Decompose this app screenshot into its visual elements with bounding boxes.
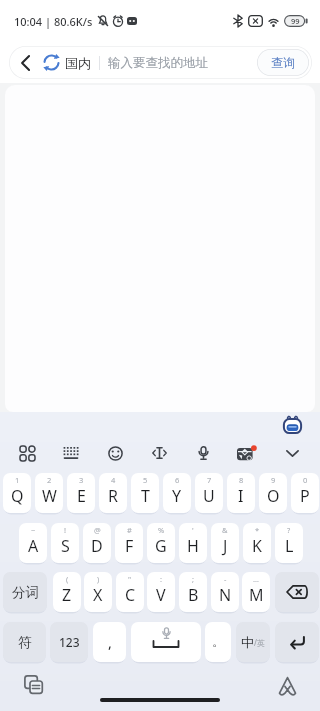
staticText: 查询: [271, 55, 295, 70]
button[interactable]: [278, 439, 306, 467]
staticText: 123: [59, 634, 80, 650]
staticText: !: [64, 525, 67, 535]
button[interactable]: 8: [227, 473, 255, 513]
button[interactable]: !: [51, 523, 79, 563]
staticText: /英: [254, 637, 265, 648]
button[interactable]: ": [116, 572, 144, 612]
staticText: 5: [143, 475, 148, 485]
button[interactable]: 0: [291, 473, 319, 513]
button[interactable]: ,: [93, 622, 126, 662]
button[interactable]: [21, 672, 47, 698]
button[interactable]: -: [211, 572, 239, 612]
staticText: U: [203, 485, 215, 507]
button[interactable]: 123: [50, 622, 88, 662]
button[interactable]: [9, 46, 43, 79]
button[interactable]: 。: [205, 622, 231, 662]
button[interactable]: %: [147, 523, 175, 563]
button[interactable]: *: [243, 523, 271, 563]
staticText: I: [238, 485, 244, 507]
staticText: B: [188, 584, 199, 606]
staticText: ;: [192, 574, 195, 584]
staticText: ~: [31, 525, 36, 535]
staticText: ): [97, 574, 100, 584]
staticText: O: [267, 485, 280, 507]
staticText: ?: [287, 525, 291, 535]
button[interactable]: [101, 439, 129, 467]
staticText: S: [61, 535, 70, 557]
staticText: F: [125, 535, 134, 557]
button[interactable]: [233, 439, 261, 467]
staticText: 2: [47, 475, 52, 485]
button[interactable]: [274, 673, 300, 699]
staticText: Y: [172, 485, 182, 507]
button[interactable]: 4: [99, 473, 127, 513]
staticText: 7: [207, 475, 212, 485]
button[interactable]: ): [84, 572, 112, 612]
staticText: L: [285, 535, 294, 557]
button[interactable]: [131, 622, 201, 662]
button[interactable]: 符: [3, 622, 46, 662]
button[interactable]: [275, 572, 319, 612]
button[interactable]: [57, 439, 85, 467]
staticText: E: [77, 485, 86, 507]
button[interactable]: 分词: [3, 572, 47, 612]
staticText: X: [93, 584, 103, 606]
button[interactable]: [275, 622, 319, 662]
staticText: 1: [15, 475, 20, 485]
staticText: 0: [303, 475, 308, 485]
staticText: 4: [111, 475, 116, 485]
button[interactable]: [145, 439, 173, 467]
staticText: 中: [241, 634, 254, 650]
button[interactable]: 3: [67, 473, 95, 513]
staticText: N: [219, 584, 232, 606]
staticText: R: [108, 485, 118, 507]
button[interactable]: 7: [195, 473, 223, 513]
button[interactable]: [283, 416, 302, 434]
staticText: &: [222, 525, 228, 535]
button[interactable]: ~: [19, 523, 47, 563]
button[interactable]: 中: [236, 622, 270, 662]
staticText: C: [125, 584, 136, 606]
staticText: T: [141, 485, 150, 507]
staticText: P: [300, 485, 310, 507]
button[interactable]: :: [147, 572, 175, 612]
button[interactable]: @: [83, 523, 111, 563]
button[interactable]: 2: [35, 473, 63, 513]
staticText: G: [155, 535, 167, 557]
button[interactable]: 9: [259, 473, 287, 513]
staticText: J: [223, 535, 228, 557]
staticText: *: [255, 525, 260, 535]
staticText: #: [127, 525, 132, 535]
staticText: 国内: [65, 55, 91, 71]
staticText: 99: [291, 16, 300, 26]
staticText: Z: [62, 584, 72, 606]
button[interactable]: [189, 439, 217, 467]
button[interactable]: ?: [275, 523, 303, 563]
staticText: A: [28, 535, 39, 557]
button[interactable]: …: [242, 572, 270, 612]
button[interactable]: ;: [179, 572, 207, 612]
button[interactable]: ': [179, 523, 207, 563]
staticText: 6: [175, 475, 180, 485]
staticText: 。: [212, 634, 225, 650]
staticText: Q: [11, 485, 24, 507]
button[interactable]: &: [211, 523, 239, 563]
button[interactable]: (: [53, 572, 81, 612]
staticText: 符: [18, 634, 32, 651]
staticText: -: [224, 574, 227, 584]
staticText: 9: [271, 475, 276, 485]
button[interactable]: 5: [131, 473, 159, 513]
staticText: 3: [79, 475, 84, 485]
button[interactable]: 1: [3, 473, 31, 513]
button[interactable]: #: [115, 523, 143, 563]
button[interactable]: 6: [163, 473, 191, 513]
button[interactable]: [13, 439, 41, 467]
staticText: M: [249, 584, 264, 606]
staticText: 分词: [12, 584, 39, 601]
staticText: ": [128, 574, 132, 584]
button[interactable]: 国内: [43, 46, 91, 79]
button[interactable]: 查询: [257, 49, 309, 76]
staticText: @: [94, 525, 101, 535]
staticText: …: [253, 574, 259, 584]
staticText: H: [187, 535, 199, 557]
